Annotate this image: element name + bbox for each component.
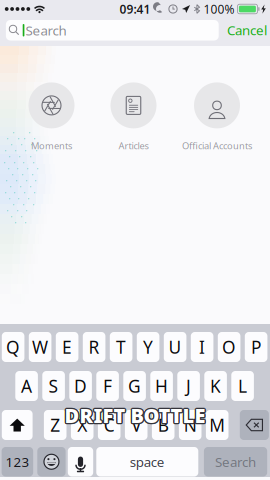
staticText: Official Accounts <box>182 139 252 152</box>
staticText: M <box>209 413 225 436</box>
button[interactable]: Search <box>6 20 219 40</box>
staticText: DRIFT BOTTLE <box>64 401 205 428</box>
button[interactable]: Articles <box>110 82 156 152</box>
button[interactable]: Official Accounts <box>182 82 252 152</box>
button[interactable]: E <box>56 332 78 362</box>
staticText: X <box>77 413 87 436</box>
staticText: C <box>104 413 115 436</box>
staticText: DRIFT BOTTLE <box>63 402 204 429</box>
button[interactable]: N <box>179 410 201 440</box>
button[interactable]: A <box>15 371 38 401</box>
button[interactable]: J <box>177 371 200 401</box>
button[interactable]: S <box>42 371 65 401</box>
staticText: L <box>238 374 247 397</box>
staticText: DRIFT BOTTLE <box>64 403 205 430</box>
button[interactable]: C <box>98 410 120 440</box>
button[interactable]: X <box>71 410 93 440</box>
staticText: J <box>186 374 191 397</box>
button[interactable]: Search <box>204 447 267 476</box>
button[interactable]: Emoji <box>37 447 66 476</box>
staticText: Search <box>215 453 256 471</box>
button[interactable]: O <box>218 332 240 362</box>
button[interactable]: D <box>69 371 92 401</box>
staticText: space <box>130 453 165 471</box>
staticText: W <box>32 335 48 358</box>
staticText: F <box>103 374 112 397</box>
button[interactable]: F <box>96 371 119 401</box>
staticText: D <box>74 374 87 397</box>
staticText: B <box>158 413 169 436</box>
staticText: DRIFT BOTTLE <box>64 401 205 427</box>
button[interactable]: R <box>83 332 105 362</box>
button[interactable]: V <box>125 410 147 440</box>
staticText: Cancel <box>227 21 267 39</box>
staticText: Search <box>26 21 67 39</box>
staticText: Moments <box>31 139 72 152</box>
button[interactable]: Cancel <box>226 20 268 40</box>
staticText: G <box>128 374 141 397</box>
staticText: DRIFT BOTTLE <box>64 402 205 429</box>
staticText: DRIFT BOTTLE <box>66 402 207 429</box>
staticText: Z <box>50 413 60 436</box>
staticText: Q <box>6 335 20 358</box>
staticText: T <box>116 335 126 358</box>
button[interactable]: G <box>123 371 146 401</box>
staticText: H <box>155 374 168 397</box>
staticText: DRIFT BOTTLE <box>64 403 205 429</box>
staticText: Y <box>143 335 153 358</box>
staticText: Articles <box>118 139 148 152</box>
button[interactable]: Dictation <box>68 447 93 476</box>
staticText: DRIFT BOTTLE <box>65 401 206 428</box>
staticText: I <box>199 335 205 358</box>
staticText: K <box>210 374 221 397</box>
staticText: U <box>169 335 182 358</box>
staticText: 123 <box>5 453 29 471</box>
staticText: A <box>21 374 32 397</box>
staticText: R <box>89 335 100 358</box>
staticText: DRIFT BOTTLE <box>65 403 206 429</box>
button[interactable]: I <box>191 332 213 362</box>
button[interactable]: B <box>152 410 174 440</box>
button[interactable]: Shift <box>2 410 33 440</box>
staticText: E <box>62 335 72 358</box>
button[interactable]: 123 <box>2 447 33 476</box>
button[interactable]: M <box>206 410 228 440</box>
staticText: O <box>222 335 236 358</box>
button[interactable]: Z <box>44 410 66 440</box>
staticText: 09:41 <box>119 1 150 17</box>
button[interactable]: H <box>150 371 173 401</box>
button[interactable]: K <box>204 371 227 401</box>
button[interactable]: Y <box>137 332 159 362</box>
staticText: P <box>251 335 261 358</box>
button[interactable]: Delete <box>240 410 269 440</box>
button[interactable]: space <box>96 447 198 476</box>
button[interactable]: P <box>245 332 267 362</box>
staticText: S <box>49 374 59 397</box>
button[interactable]: L <box>231 371 254 401</box>
button[interactable]: U <box>164 332 186 362</box>
staticText: V <box>131 413 141 436</box>
button[interactable]: Moments <box>28 82 74 152</box>
staticText: N <box>184 413 197 436</box>
button[interactable]: W <box>29 332 51 362</box>
button[interactable]: Q <box>2 332 24 362</box>
staticText: 100% <box>203 1 234 17</box>
button[interactable]: T <box>110 332 132 362</box>
